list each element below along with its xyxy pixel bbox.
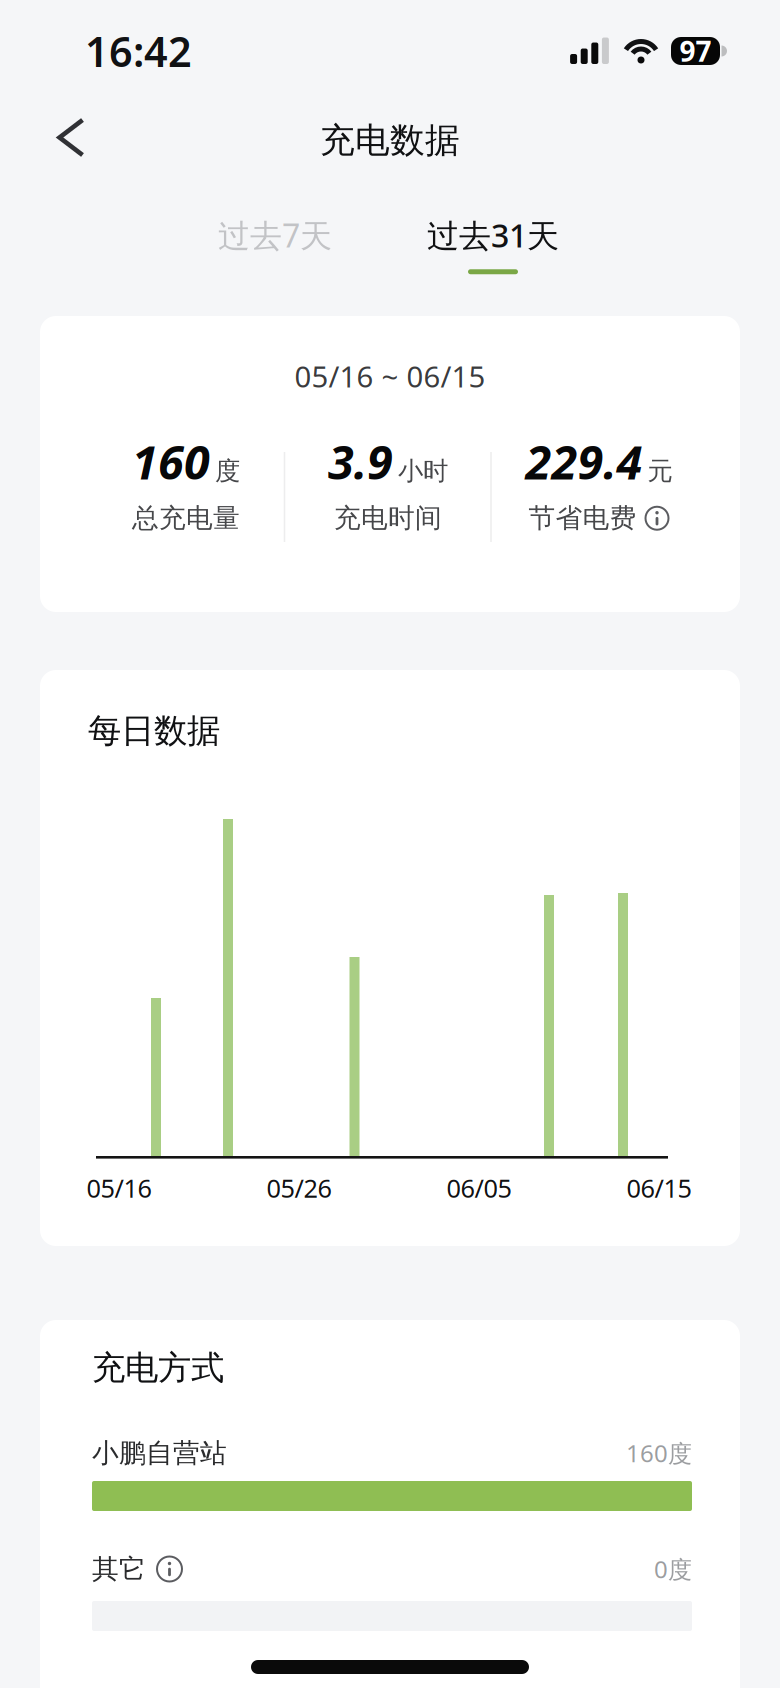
staticText: 0度 [654, 1553, 692, 1585]
button[interactable]: 过去31天 [398, 212, 588, 276]
staticText: 小时 [398, 455, 448, 487]
button[interactable]: About saved cost [644, 506, 669, 531]
staticText: 过去31天 [427, 214, 559, 256]
staticText: 小鹏自营站 [92, 1437, 227, 1469]
staticText: 充电时间 [334, 502, 442, 535]
staticText: 总充电量 [132, 502, 240, 535]
staticText: 充电方式 [92, 1347, 224, 1388]
staticText: 06/05 [446, 1171, 511, 1205]
staticText: 3.9 [328, 430, 393, 492]
staticText: 节省电费 [528, 502, 636, 535]
staticText: 160 [132, 430, 210, 492]
staticText: 充电数据 [320, 119, 460, 162]
staticText: 其它 [92, 1553, 146, 1585]
button[interactable]: 过去7天 [185, 212, 365, 258]
staticText: 每日数据 [88, 710, 220, 751]
staticText: 16:42 [85, 24, 192, 78]
button[interactable]: About other charging [156, 1555, 183, 1582]
staticText: 05/26 [266, 1171, 331, 1205]
staticText: 229.4 [525, 430, 642, 492]
staticText: 05/16 [86, 1171, 151, 1205]
staticText: 06/15 [626, 1171, 691, 1205]
staticText: 05/16 ~ 06/15 [294, 356, 485, 395]
button[interactable]: Back [48, 114, 95, 161]
staticText: 过去7天 [218, 214, 332, 256]
staticText: 160度 [626, 1437, 692, 1469]
staticText: 97 [679, 32, 711, 70]
staticText: 度 [215, 455, 240, 487]
staticText: 元 [647, 455, 672, 487]
